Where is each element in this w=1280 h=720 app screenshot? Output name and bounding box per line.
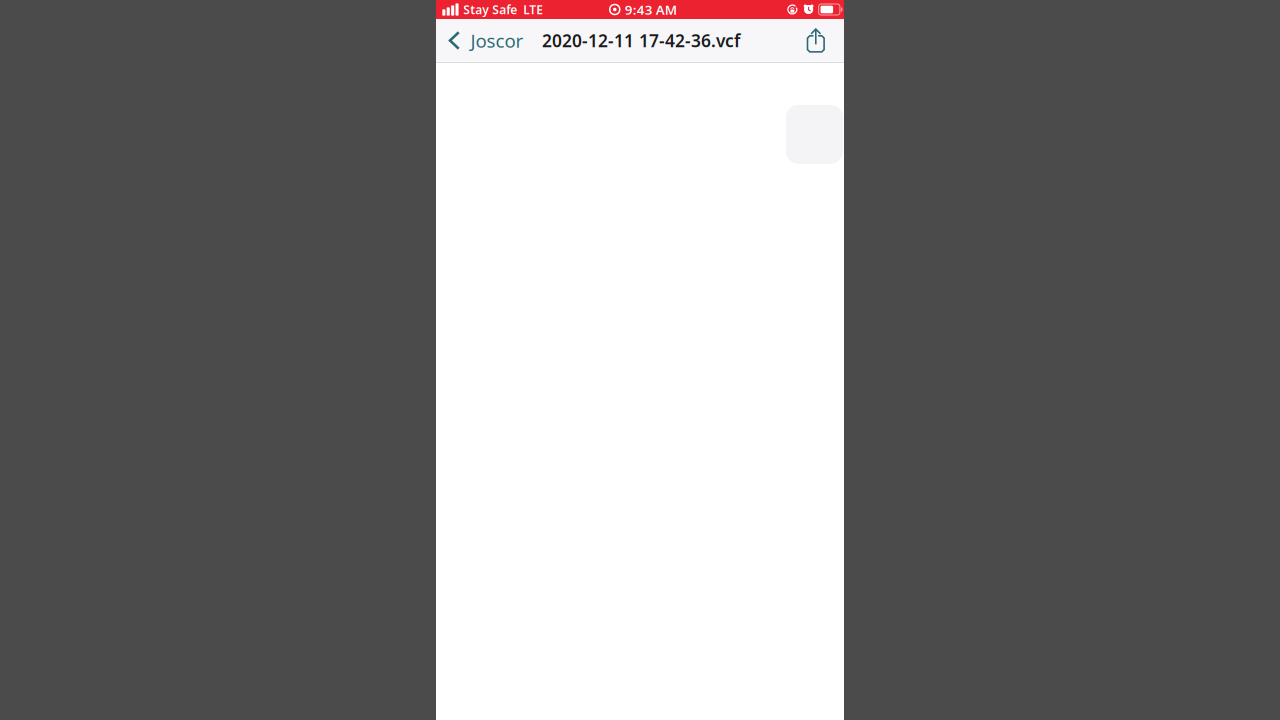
staticText: LTE — [523, 1, 543, 17]
staticText: Stay Safe — [463, 1, 517, 17]
staticText: Joscor — [470, 28, 523, 53]
staticText: 2020-12-11 17-42-36.vcf — [542, 29, 740, 52]
button[interactable]: Share — [797, 19, 835, 62]
staticText: 9:43 AM — [625, 1, 677, 18]
button[interactable]: Joscor — [436, 19, 531, 62]
